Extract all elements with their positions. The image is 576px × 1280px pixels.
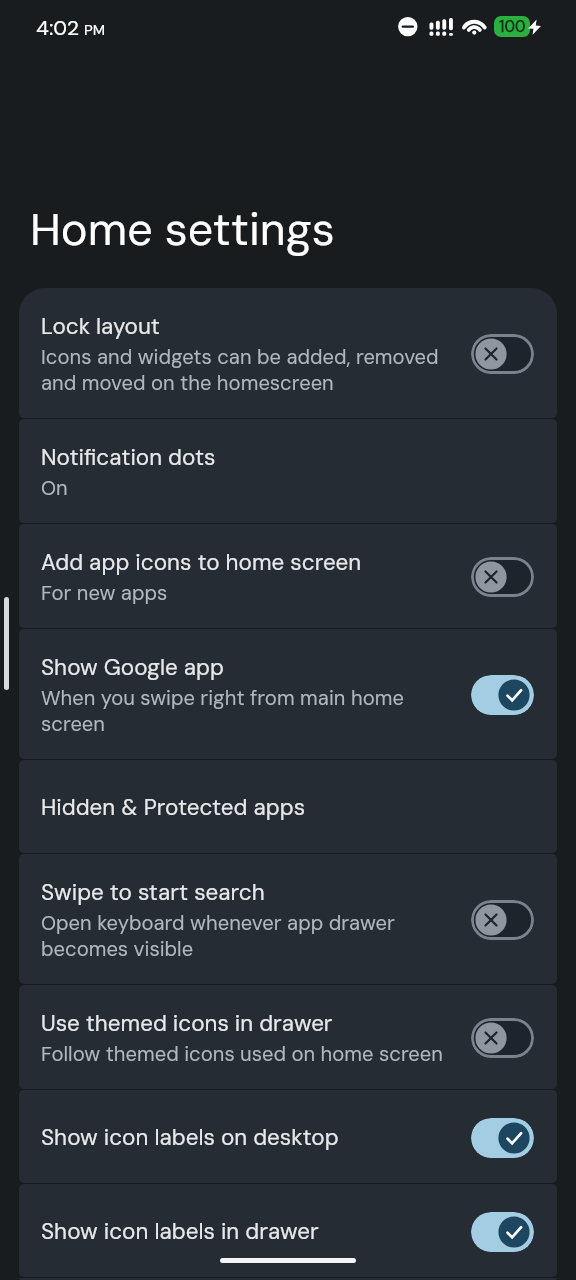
staticText: For new apps <box>41 580 168 606</box>
staticText: PM <box>84 20 106 40</box>
staticText: 4:02 <box>36 14 80 41</box>
staticText: Hidden & Protected apps <box>41 793 306 822</box>
staticText: Icons and widgets can be added, removed … <box>41 344 457 396</box>
staticText: Notification dots <box>41 443 216 472</box>
staticText: 100 <box>499 16 526 37</box>
button[interactable]: Switch on <box>471 1212 534 1252</box>
staticText: Show icon labels on desktop <box>41 1123 339 1152</box>
button[interactable]: Switch on <box>471 1118 534 1158</box>
staticText: Show icon labels in drawer <box>41 1217 319 1246</box>
button[interactable]: Add app icons to home screen <box>19 524 557 628</box>
button[interactable]: Hidden & Protected apps <box>19 760 557 853</box>
staticText: Show Google app <box>41 653 224 682</box>
button[interactable]: Switch on <box>471 675 534 715</box>
button[interactable]: Show Google app <box>19 629 557 759</box>
staticText: Home settings <box>30 200 335 259</box>
button[interactable]: Show icon labels on desktop <box>19 1090 557 1183</box>
staticText: Follow themed icons used on home screen <box>41 1041 443 1067</box>
staticText: Lock layout <box>41 312 160 341</box>
button[interactable]: Lock layout <box>19 288 557 418</box>
staticText: Use themed icons in drawer <box>41 1009 333 1038</box>
staticText: On <box>41 475 68 501</box>
button[interactable]: Switch off <box>471 557 534 597</box>
staticText: Add app icons to home screen <box>41 548 362 577</box>
button[interactable]: Switch off <box>471 900 534 940</box>
button[interactable]: Show icon labels in drawer <box>19 1184 557 1277</box>
staticText: Open keyboard whenever app drawer become… <box>41 910 457 962</box>
staticText: When you swipe right from main home scre… <box>41 685 457 737</box>
button[interactable]: Notification dots <box>19 419 557 523</box>
button[interactable]: Switch off <box>471 334 534 374</box>
button[interactable]: Swipe to start search <box>19 854 557 984</box>
button[interactable]: Switch off <box>471 1018 534 1058</box>
button[interactable]: Use themed icons in drawer <box>19 985 557 1089</box>
staticText: Swipe to start search <box>41 878 265 907</box>
